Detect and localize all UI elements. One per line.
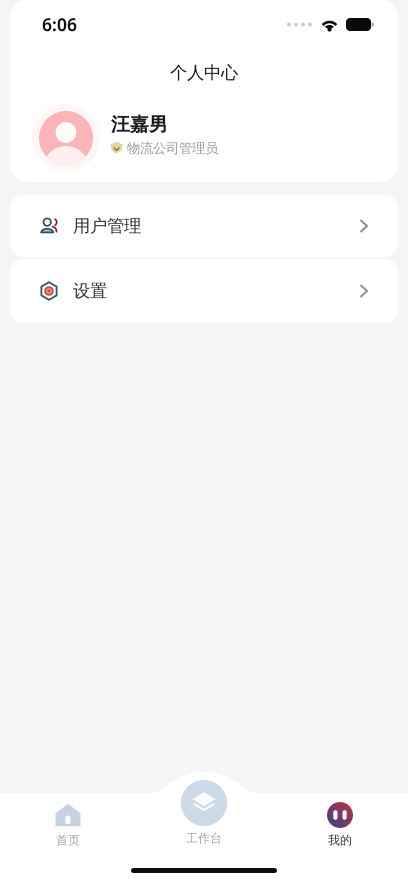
button[interactable]: 我的 (272, 774, 408, 883)
staticText: 汪嘉男 (111, 113, 168, 136)
staticText: 个人中心 (170, 62, 238, 83)
button[interactable]: 设置 (10, 259, 398, 323)
staticText: 用户管理 (73, 215, 141, 237)
staticText: 物流公司管理员 (127, 140, 218, 156)
button[interactable]: 用户管理 (10, 195, 398, 257)
button[interactable]: 首页 (0, 774, 136, 883)
staticText: 首页 (56, 833, 80, 848)
button[interactable]: 工作台 (136, 774, 272, 883)
staticText: 设置 (73, 280, 107, 302)
staticText: 我的 (328, 833, 352, 848)
staticText: 6:06 (42, 13, 77, 36)
staticText: 工作台 (186, 831, 222, 846)
